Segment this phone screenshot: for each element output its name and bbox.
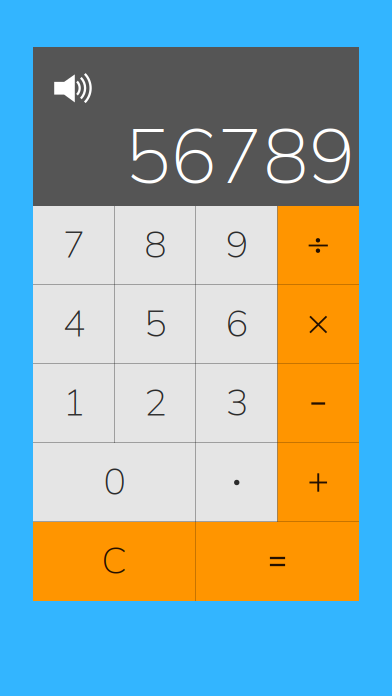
button[interactable]: 0	[33, 443, 196, 522]
staticText: 4	[63, 299, 85, 346]
staticText: 6	[226, 299, 248, 346]
button[interactable]: Subtract	[277, 364, 359, 443]
button[interactable]: Sound	[33, 47, 89, 102]
staticText: 8	[144, 220, 166, 267]
staticText: 0	[103, 457, 125, 504]
button[interactable]: 1	[33, 364, 114, 443]
button[interactable]: 6	[196, 285, 277, 364]
button[interactable]: Equals	[196, 522, 359, 601]
button[interactable]: Add	[277, 443, 359, 522]
button[interactable]: 7	[33, 206, 114, 285]
button[interactable]: Decimal point	[196, 443, 277, 522]
staticText: 5	[144, 299, 166, 346]
button[interactable]: 4	[33, 285, 114, 364]
button[interactable]: C	[33, 522, 196, 601]
button[interactable]: 8	[114, 206, 196, 285]
staticText: 9	[226, 220, 248, 267]
button[interactable]: 5	[114, 285, 196, 364]
button[interactable]: 9	[196, 206, 277, 285]
staticText: 7	[63, 220, 85, 267]
staticText: C	[101, 536, 127, 583]
button[interactable]: Multiply	[277, 285, 359, 364]
button[interactable]: 3	[196, 364, 277, 443]
staticText: 56789	[125, 107, 355, 202]
button[interactable]: 2	[114, 364, 196, 443]
staticText: 2	[144, 378, 166, 425]
button[interactable]: Divide	[277, 206, 359, 285]
staticText: 1	[63, 378, 85, 425]
staticText: 3	[226, 378, 248, 425]
